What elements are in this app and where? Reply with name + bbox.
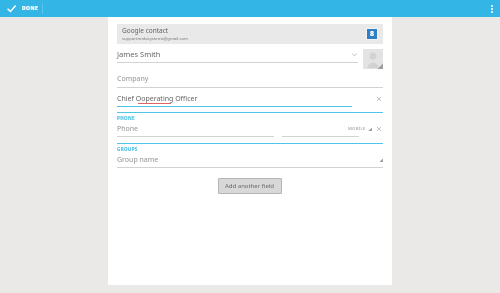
- staticText: Google contact: [122, 26, 169, 35]
- button[interactable]: Google contact: [117, 24, 383, 44]
- button[interactable]: Phone: [117, 124, 383, 137]
- staticText: DONE: [22, 5, 39, 12]
- button[interactable]: More options: [484, 0, 500, 17]
- button[interactable]: Clear field: [375, 125, 383, 133]
- button[interactable]: Chief Ooperating Officer: [117, 94, 383, 107]
- button[interactable]: DONE: [0, 3, 47, 14]
- staticText: GROUPS: [117, 146, 138, 152]
- staticText: PHONE: [117, 115, 135, 121]
- button[interactable]: James Smith: [117, 49, 358, 63]
- staticText: Chief Ooperating Officer: [117, 94, 198, 104]
- staticText: Company: [117, 74, 149, 84]
- staticText: MOBILE: [348, 126, 366, 132]
- staticText: supportmobisystems@gmail.com: [122, 36, 188, 42]
- button[interactable]: Company: [117, 74, 383, 88]
- staticText: Phone: [117, 124, 348, 134]
- button[interactable]: Add another field: [218, 178, 282, 194]
- staticText: James Smith: [117, 49, 351, 59]
- staticText: 8: [370, 29, 375, 39]
- staticText: Add another field: [225, 182, 275, 190]
- button[interactable]: Clear field: [375, 95, 383, 103]
- staticText: Group name: [117, 155, 379, 165]
- button[interactable]: Contact photo: [363, 49, 383, 69]
- button[interactable]: Group name: [117, 155, 383, 168]
